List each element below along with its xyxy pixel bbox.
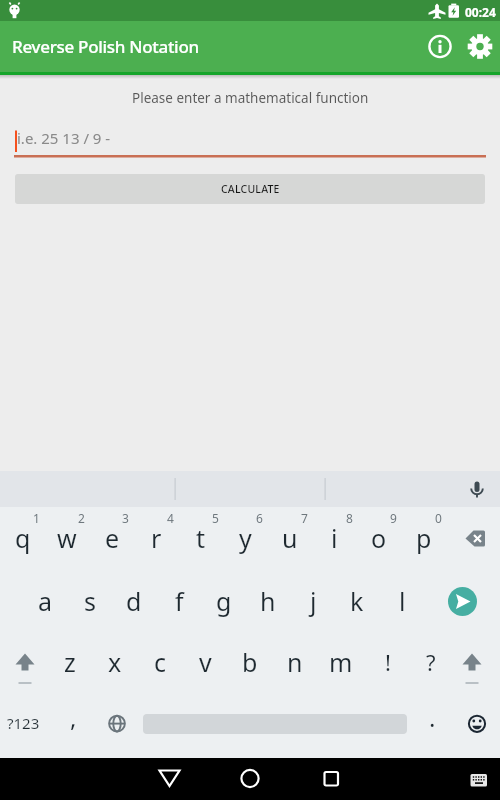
staticText: x	[108, 645, 122, 679]
button[interactable]: o	[357, 510, 401, 566]
button[interactable]	[150, 759, 190, 799]
staticText: a	[38, 584, 53, 618]
staticText: j	[310, 584, 317, 618]
button[interactable]	[424, 31, 456, 63]
button[interactable]: m	[320, 635, 362, 689]
staticText: e	[105, 521, 120, 555]
button[interactable]	[3, 635, 47, 689]
staticText: 1	[33, 510, 40, 524]
staticText: 00:24	[465, 4, 496, 20]
button[interactable]: q	[1, 510, 45, 566]
staticText: n	[287, 645, 303, 679]
staticText: 2	[78, 510, 85, 524]
button[interactable]: e	[90, 510, 134, 566]
button[interactable]: x	[94, 635, 136, 689]
staticText: 8	[346, 510, 353, 524]
staticText: g	[216, 584, 232, 618]
staticText: 9	[390, 510, 397, 524]
button[interactable]: k	[335, 573, 379, 629]
button[interactable]	[230, 759, 270, 799]
staticText: m	[329, 645, 353, 679]
button[interactable]: j	[291, 573, 335, 629]
button[interactable]: ?	[410, 635, 452, 689]
button[interactable]: l	[380, 573, 424, 629]
button[interactable]: a	[23, 573, 67, 629]
staticText: z	[64, 645, 76, 679]
button[interactable]: f	[157, 573, 201, 629]
staticText: 3	[122, 510, 129, 524]
staticText: o	[371, 521, 387, 555]
staticText: 7	[301, 510, 308, 524]
staticText: w	[57, 521, 77, 555]
staticText: Reverse Polish Notation	[12, 35, 199, 58]
button[interactable]	[464, 31, 496, 63]
staticText: i.e. 25 13 / 9 -	[17, 128, 111, 148]
button[interactable]: v	[184, 635, 226, 689]
button[interactable]: p	[402, 510, 446, 566]
button[interactable]: s	[68, 573, 112, 629]
button[interactable]: g	[202, 573, 246, 629]
staticText: y	[239, 521, 252, 555]
staticText: f	[175, 584, 184, 618]
button[interactable]	[311, 759, 351, 799]
staticText: c	[154, 645, 167, 679]
button[interactable]: z	[49, 635, 91, 689]
button[interactable]: i.e. 25 13 / 9 -	[0, 120, 500, 160]
button[interactable]: n	[274, 635, 316, 689]
button[interactable]: c	[139, 635, 181, 689]
button[interactable]	[462, 767, 496, 793]
button[interactable]	[450, 635, 494, 689]
button[interactable]: b	[229, 635, 271, 689]
staticText: 5	[212, 510, 219, 524]
staticText: b	[242, 645, 258, 679]
staticText: t	[196, 521, 206, 555]
button[interactable]	[101, 707, 133, 739]
staticText: ?123	[7, 713, 40, 733]
button[interactable]	[440, 579, 485, 624]
staticText: q	[15, 521, 31, 555]
staticText: h	[260, 584, 276, 618]
button[interactable]	[452, 510, 498, 566]
button[interactable]: h	[246, 573, 290, 629]
staticText: s	[84, 584, 96, 618]
button[interactable]: ?123	[1, 696, 45, 750]
button[interactable]	[462, 474, 492, 504]
staticText: !	[385, 647, 391, 677]
staticText: d	[126, 584, 142, 618]
staticText: 6	[256, 510, 263, 524]
button[interactable]: .	[412, 690, 452, 744]
staticText: CALCULATE	[221, 182, 280, 196]
button[interactable]	[461, 707, 493, 739]
button[interactable]: CALCULATE	[15, 174, 485, 204]
button[interactable]: w	[45, 510, 89, 566]
staticText: i	[331, 521, 338, 555]
button[interactable]: ,	[53, 690, 93, 744]
button[interactable]: d	[112, 573, 156, 629]
staticText: 4	[167, 510, 174, 524]
staticText: u	[282, 521, 298, 555]
button[interactable]: u	[268, 510, 312, 566]
staticText: ?	[426, 647, 436, 677]
button[interactable]: y	[223, 510, 267, 566]
button[interactable]: t	[179, 510, 223, 566]
button[interactable]: !	[367, 635, 409, 689]
staticText: 0	[435, 510, 442, 524]
button[interactable]: i	[312, 510, 356, 566]
staticText: r	[151, 521, 162, 555]
button[interactable]: r	[134, 510, 178, 566]
staticText: k	[350, 584, 364, 618]
staticText: .	[429, 701, 436, 734]
staticText: p	[416, 521, 432, 555]
staticText: v	[199, 645, 212, 679]
staticText: Please enter a mathematical function	[132, 89, 369, 107]
staticText: l	[399, 584, 406, 618]
staticText: ,	[70, 701, 77, 734]
